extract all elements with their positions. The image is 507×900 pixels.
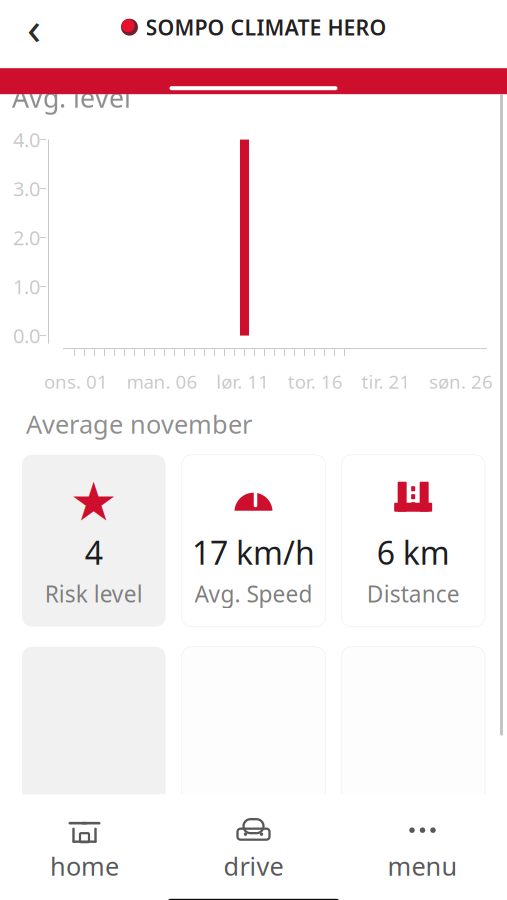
staticText: tor. 16 bbox=[288, 369, 343, 394]
staticText: 4.0 bbox=[13, 126, 40, 153]
button[interactable]: 6 km bbox=[341, 455, 485, 627]
staticText: 17 km/h bbox=[192, 531, 315, 574]
staticText: Risk level bbox=[45, 579, 143, 609]
staticText: menu bbox=[387, 849, 457, 883]
staticText: 6 km bbox=[377, 531, 450, 574]
staticText: 1.0 bbox=[13, 273, 40, 300]
button[interactable]: ★ bbox=[22, 455, 166, 627]
staticText: ‹ bbox=[27, 0, 41, 57]
staticText: Avg. level bbox=[12, 80, 131, 115]
button[interactable]: 17 km/h bbox=[182, 455, 325, 627]
staticText: SOMPO CLIMATE HERO bbox=[145, 13, 386, 41]
staticText: 3.0 bbox=[13, 175, 40, 202]
staticText: ★ bbox=[70, 471, 118, 532]
staticText: ons. 01 bbox=[44, 369, 108, 394]
button[interactable]: Back bbox=[12, 5, 56, 49]
staticText: Avg. Speed bbox=[194, 579, 312, 609]
staticText: 4 bbox=[85, 531, 103, 574]
button[interactable]: home bbox=[0, 810, 169, 889]
staticText: 2.0 bbox=[13, 224, 40, 251]
staticText: tir. 21 bbox=[361, 369, 410, 394]
staticText: Distance bbox=[367, 579, 460, 609]
button[interactable]: drive bbox=[169, 810, 338, 889]
staticText: søn. 26 bbox=[429, 369, 493, 394]
staticText: man. 06 bbox=[127, 369, 198, 394]
staticText: Average november bbox=[26, 407, 252, 441]
staticText: lør. 11 bbox=[216, 369, 269, 394]
staticText: home bbox=[50, 849, 119, 883]
staticText: 0.0 bbox=[13, 322, 40, 349]
button[interactable]: menu bbox=[338, 810, 507, 889]
staticText: drive bbox=[223, 849, 283, 883]
